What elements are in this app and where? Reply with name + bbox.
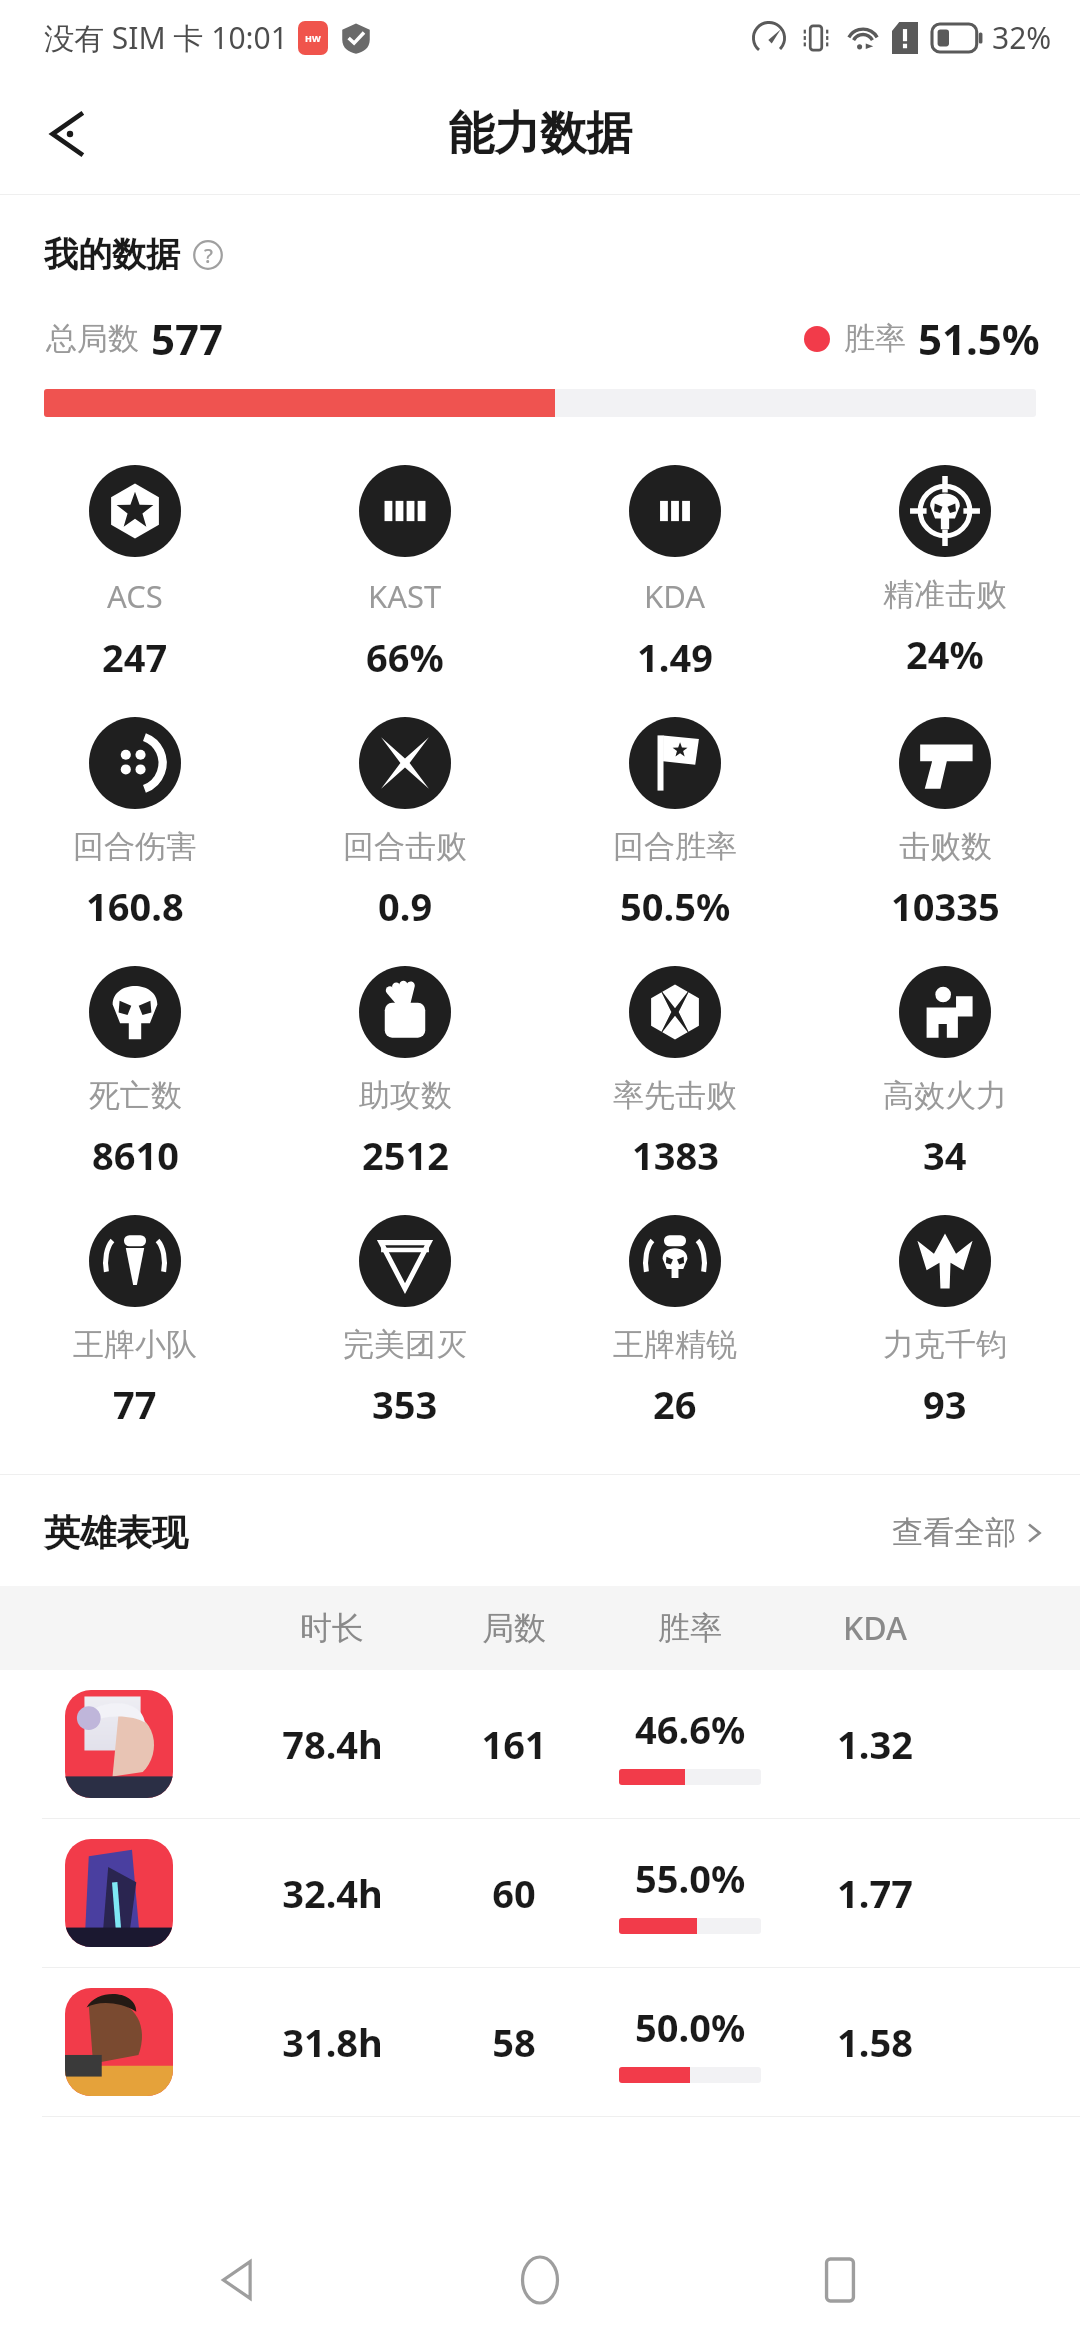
staticText: 王牌精锐 (613, 1325, 737, 1364)
button[interactable]: 完美团灭 (270, 1215, 540, 1430)
staticText: KDA (843, 1606, 907, 1650)
staticText: 34 (923, 1129, 967, 1181)
staticText: 回合击败 (343, 827, 467, 866)
staticText: 王牌小队 (73, 1325, 197, 1364)
staticText: 32.4h (282, 1867, 383, 1919)
button[interactable]: 精准击败 (810, 465, 1080, 680)
staticText: 时长 (300, 1608, 364, 1648)
staticText: 力克千钧 (883, 1325, 1007, 1364)
staticText: 50.0% (635, 2001, 746, 2053)
staticText: 1383 (632, 1129, 719, 1181)
staticText: ACS (107, 575, 163, 617)
staticText: 161 (481, 1718, 547, 1770)
staticText: 1.58 (837, 2016, 913, 2068)
staticText: 总局数 (46, 319, 139, 358)
button[interactable]: 回合胜率 (540, 717, 810, 932)
staticText: 1.32 (837, 1718, 913, 1770)
staticText: 高效火力 (883, 1076, 1007, 1115)
button[interactable]: Back (180, 2220, 300, 2340)
button[interactable]: 回合伤害 (0, 717, 270, 932)
staticText: 8610 (92, 1129, 179, 1181)
staticText: ? (204, 242, 213, 269)
button[interactable]: KDA (540, 465, 810, 683)
staticText: 160.8 (86, 880, 184, 932)
button[interactable]: Back (22, 86, 118, 182)
staticText: 58 (492, 2016, 536, 2068)
staticText: KDA (644, 575, 706, 617)
staticText: 50.5% (620, 880, 731, 932)
staticText: 胜率 (658, 1608, 722, 1648)
staticText: 66% (366, 631, 444, 683)
button[interactable]: KAST (270, 465, 540, 683)
staticText: 1.77 (837, 1867, 913, 1919)
staticText: 10335 (891, 880, 1000, 932)
staticText: 助攻数 (359, 1076, 452, 1115)
button[interactable]: Help (190, 237, 226, 273)
staticText: HW (305, 32, 321, 44)
staticText: 胜率 (844, 319, 906, 358)
staticText: 查看全部 (892, 1513, 1016, 1552)
staticText: 78.4h (282, 1718, 383, 1770)
staticText: 51.5% (918, 310, 1040, 367)
staticText: 24% (906, 628, 984, 680)
staticText: 击败数 (899, 827, 992, 866)
staticText: 局数 (482, 1608, 546, 1648)
staticText: 回合伤害 (73, 827, 197, 866)
button[interactable]: Recent apps (780, 2220, 900, 2340)
staticText: 77 (113, 1378, 157, 1430)
button[interactable]: 31.8h (0, 1968, 1080, 2116)
staticText: 我的数据 (44, 233, 180, 276)
staticText: 55.0% (635, 1852, 746, 1904)
staticText: 577 (151, 310, 224, 367)
staticText: KAST (368, 575, 442, 617)
button[interactable]: 王牌小队 (0, 1215, 270, 1430)
button[interactable]: 查看全部 (886, 1505, 1050, 1560)
staticText: 247 (102, 631, 168, 683)
staticText: 能力数据 (448, 105, 632, 163)
staticText: 回合胜率 (613, 827, 737, 866)
staticText: 60 (492, 1867, 536, 1919)
button[interactable]: 78.4h (0, 1670, 1080, 1818)
staticText: 精准击败 (883, 575, 1007, 614)
staticText: 46.6% (635, 1703, 746, 1755)
staticText: 32% (992, 17, 1052, 58)
staticText: 93 (923, 1378, 967, 1430)
staticText: 率先击败 (613, 1076, 737, 1115)
button[interactable]: 助攻数 (270, 966, 540, 1181)
button[interactable]: 高效火力 (810, 966, 1080, 1181)
staticText: 2512 (362, 1129, 449, 1181)
button[interactable]: 死亡数 (0, 966, 270, 1181)
staticText: 0.9 (378, 880, 433, 932)
staticText: 1.49 (637, 631, 713, 683)
staticText: 没有 SIM 卡 10:01 (44, 17, 288, 58)
staticText: 完美团灭 (343, 1325, 467, 1364)
button[interactable]: 力克千钧 (810, 1215, 1080, 1430)
staticText: 英雄表现 (44, 1510, 188, 1555)
staticText: 26 (653, 1378, 697, 1430)
staticText: 死亡数 (89, 1076, 182, 1115)
staticText: 31.8h (282, 2016, 383, 2068)
button[interactable]: 击败数 (810, 717, 1080, 932)
button[interactable]: 王牌精锐 (540, 1215, 810, 1430)
button[interactable]: 32.4h (0, 1819, 1080, 1967)
button[interactable]: 回合击败 (270, 717, 540, 932)
button[interactable]: Home (480, 2220, 600, 2340)
button[interactable]: 率先击败 (540, 966, 810, 1181)
button[interactable]: ACS (0, 465, 270, 683)
staticText: 353 (372, 1378, 438, 1430)
